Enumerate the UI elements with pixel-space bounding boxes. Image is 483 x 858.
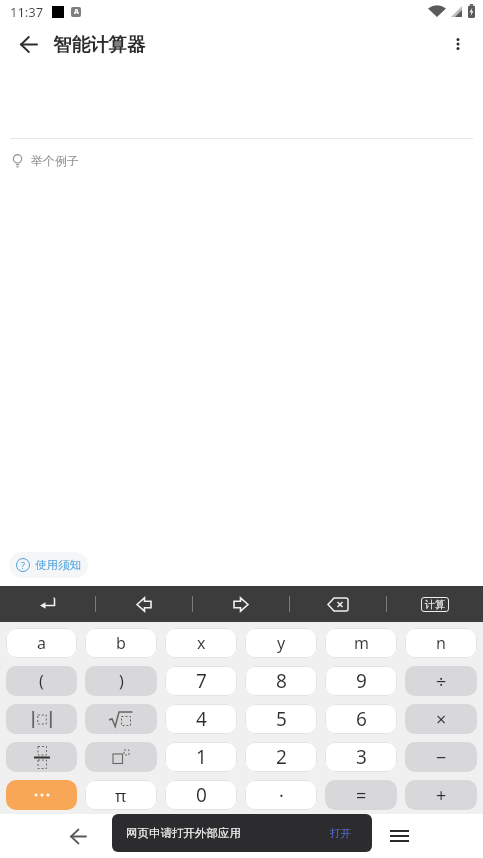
staticText: x [197,632,206,654]
staticText: 打开 [330,827,351,840]
staticText: A [74,7,79,17]
button[interactable]: 9 [325,666,397,696]
button[interactable]: 2 [245,742,317,772]
button[interactable] [85,704,157,734]
button[interactable] [383,820,415,852]
button[interactable]: π [85,780,157,810]
button[interactable]: 举个例子 [12,153,79,168]
staticText: × [436,707,447,732]
button[interactable]: a [6,628,77,658]
button[interactable]: 0 [165,780,237,810]
staticText: 9 [356,668,367,694]
button[interactable]: + [405,780,477,810]
button[interactable] [62,820,94,852]
button[interactable] [6,704,77,734]
button[interactable]: b [85,628,157,658]
staticText: 5 [276,706,287,732]
button[interactable]: = [325,780,397,810]
staticText: 网页申请打开外部应用 [126,826,241,840]
button[interactable]: − [405,742,477,772]
button[interactable]: 5 [245,704,317,734]
staticText: 1 [196,744,207,770]
staticText: 计算 [425,598,445,611]
button[interactable]: ( [6,666,77,696]
button[interactable] [11,26,47,62]
staticText: 3 [356,744,367,770]
button[interactable]: x [165,628,237,658]
button[interactable]: 1 [165,742,237,772]
staticText: − [436,745,447,770]
staticText: n [436,632,446,654]
staticText: 举个例子 [31,153,79,168]
button[interactable]: 3 [325,742,397,772]
button[interactable] [6,780,77,810]
staticText: 4 [196,706,207,732]
button[interactable]: ÷ [405,666,477,696]
staticText: ( [39,670,44,692]
staticText: 6 [356,706,367,732]
button[interactable]: y [245,628,317,658]
button[interactable] [437,24,479,64]
staticText: 使用须知 [35,558,81,572]
button[interactable]: n [405,628,477,658]
button[interactable]: 4 [165,704,237,734]
staticText: a [37,632,46,654]
staticText: 11:37 [10,3,44,21]
staticText: = [356,783,367,808]
staticText: · [279,783,284,808]
staticText: + [436,783,447,808]
staticText: 0 [196,782,207,808]
button[interactable] [96,586,192,622]
staticText: ÷ [436,669,447,694]
button[interactable]: 8 [245,666,317,696]
staticText: 智能计算器 [53,33,146,56]
button[interactable] [0,586,95,622]
staticText: b [116,632,126,654]
button[interactable] [290,586,386,622]
button[interactable]: m [325,628,397,658]
button[interactable] [6,742,77,772]
button[interactable] [85,742,157,772]
staticText: π [115,784,127,807]
staticText: y [277,632,286,654]
staticText: ? [21,559,25,571]
staticText: ) [119,670,124,692]
button[interactable]: ) [85,666,157,696]
button[interactable]: 7 [165,666,237,696]
button[interactable]: 6 [325,704,397,734]
button[interactable]: × [405,704,477,734]
button[interactable]: · [245,780,317,810]
button[interactable]: 计算 [387,586,483,622]
staticText: 2 [276,744,287,770]
staticText: 8 [276,668,287,694]
staticText: 7 [196,668,207,694]
button[interactable]: ? [9,552,88,578]
button[interactable] [193,586,289,622]
staticText: m [354,632,369,654]
button[interactable]: 打开 [330,827,351,840]
